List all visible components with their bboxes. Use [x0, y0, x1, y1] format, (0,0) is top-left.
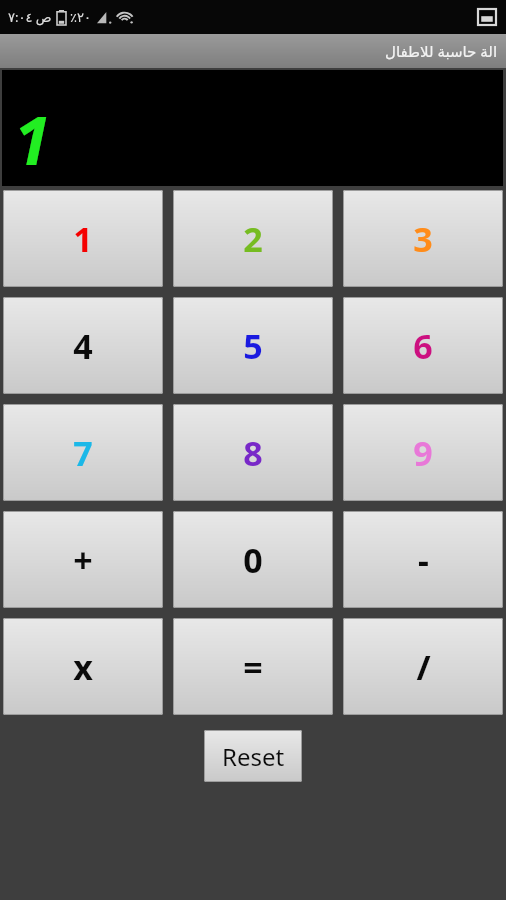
button[interactable]: - — [343, 511, 503, 608]
staticText: 1 — [73, 216, 93, 262]
staticText: ٪٢٠ — [70, 10, 91, 25]
staticText: 7 — [73, 430, 93, 476]
button[interactable]: x — [3, 618, 163, 715]
staticText: 9 — [413, 430, 433, 476]
staticText: الة حاسبة للاطفال — [385, 41, 498, 61]
staticText: 5 — [243, 323, 263, 369]
button[interactable]: 7 — [3, 404, 163, 501]
staticText: 2 — [243, 216, 263, 262]
button[interactable]: 3 — [343, 190, 503, 287]
staticText: 0 — [243, 537, 263, 583]
staticText: - — [418, 537, 429, 583]
button[interactable]: = — [173, 618, 333, 715]
button[interactable]: 1 — [3, 190, 163, 287]
button[interactable]: 8 — [173, 404, 333, 501]
button[interactable]: + — [3, 511, 163, 608]
staticText: 3 — [413, 216, 433, 262]
button[interactable]: 9 — [343, 404, 503, 501]
staticText: / — [416, 644, 431, 690]
staticText: = — [243, 644, 263, 690]
button[interactable]: 4 — [3, 297, 163, 394]
button[interactable]: Reset — [204, 730, 302, 782]
button[interactable]: 5 — [173, 297, 333, 394]
staticText: 6 — [413, 323, 433, 369]
button[interactable]: 6 — [343, 297, 503, 394]
staticText: ص ٧:٠٤ — [8, 8, 52, 26]
staticText: 8 — [243, 430, 263, 476]
button[interactable]: 2 — [173, 190, 333, 287]
staticText: Reset — [222, 740, 285, 773]
staticText: + — [73, 537, 93, 583]
button[interactable]: 0 — [173, 511, 333, 608]
staticText: 4 — [73, 323, 93, 369]
staticText: x — [73, 644, 93, 690]
button[interactable]: / — [343, 618, 503, 715]
staticText: 1 — [14, 94, 51, 184]
